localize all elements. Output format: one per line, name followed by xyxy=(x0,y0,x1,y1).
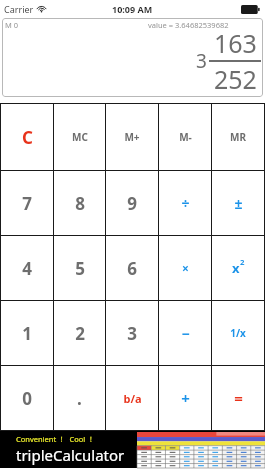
staticText: 6 xyxy=(127,257,137,280)
staticText: 163 xyxy=(214,26,257,60)
staticText: 7 xyxy=(22,192,32,215)
button[interactable]: − xyxy=(159,301,211,365)
staticText: . xyxy=(77,387,82,410)
staticText: M- xyxy=(179,130,192,144)
staticText: b/a xyxy=(123,391,142,406)
button[interactable]: tripleCalculator advertisement xyxy=(0,431,265,468)
button[interactable]: 2 xyxy=(54,301,105,365)
staticText: 2 xyxy=(75,322,85,345)
staticText: C xyxy=(22,126,33,149)
button[interactable]: ÷ xyxy=(159,171,211,235)
button[interactable]: x xyxy=(212,236,264,300)
staticText: 3 xyxy=(196,48,207,74)
button[interactable]: . xyxy=(54,366,105,430)
button[interactable]: ± xyxy=(212,171,264,235)
button[interactable]: = xyxy=(212,366,264,430)
staticText: 10:09 AM xyxy=(112,3,153,15)
staticText: × xyxy=(182,260,189,276)
staticText: 9 xyxy=(127,192,137,215)
button[interactable]: M+ xyxy=(106,104,158,170)
staticText: 2 xyxy=(240,257,245,268)
button[interactable]: 9 xyxy=(106,171,158,235)
button[interactable]: C xyxy=(1,104,53,170)
staticText: ÷ xyxy=(181,194,190,213)
button[interactable]: b/a xyxy=(106,366,158,430)
staticText: Carrier xyxy=(4,3,34,15)
button[interactable]: 1 xyxy=(1,301,53,365)
button[interactable]: 1/x xyxy=(212,301,264,365)
staticText: 0 xyxy=(22,387,32,410)
staticText: 8 xyxy=(75,192,85,215)
staticText: M+ xyxy=(124,130,140,144)
button[interactable]: MR xyxy=(212,104,264,170)
button[interactable]: MC xyxy=(54,104,105,170)
button[interactable]: 4 xyxy=(1,236,53,300)
staticText: 3 xyxy=(127,322,137,345)
button[interactable]: 3 xyxy=(106,301,158,365)
staticText: − xyxy=(181,324,190,343)
button[interactable]: + xyxy=(159,366,211,430)
staticText: 1 xyxy=(22,322,32,345)
button[interactable]: 8 xyxy=(54,171,105,235)
staticText: ± xyxy=(234,194,243,213)
staticText: 4 xyxy=(22,257,32,280)
staticText: 252 xyxy=(214,62,257,96)
button[interactable]: 0 xyxy=(1,366,53,430)
staticText: MR xyxy=(230,130,246,144)
staticText: 5 xyxy=(75,257,85,280)
staticText: Convenient ！ Cool ！ xyxy=(16,434,95,444)
button[interactable]: × xyxy=(159,236,211,300)
staticText: x xyxy=(232,259,240,277)
staticText: tripleCalculator xyxy=(16,445,125,465)
button[interactable]: 7 xyxy=(1,171,53,235)
staticText: MC xyxy=(72,130,88,144)
staticText: M 0 xyxy=(5,20,19,30)
staticText: + xyxy=(181,388,190,408)
button[interactable]: 5 xyxy=(54,236,105,300)
staticText: = xyxy=(234,388,243,408)
button[interactable]: 6 xyxy=(106,236,158,300)
staticText: value = 3.64682539682 xyxy=(148,20,229,30)
staticText: 1/x xyxy=(230,326,246,340)
button[interactable]: M- xyxy=(159,104,211,170)
